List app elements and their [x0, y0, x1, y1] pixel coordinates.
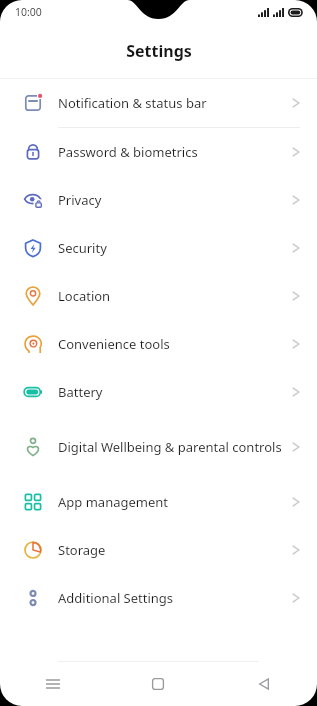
button[interactable]: Notification & status bar [0, 79, 317, 127]
button[interactable]: Password & biometrics [0, 128, 317, 176]
staticText: Location [58, 287, 282, 305]
button[interactable]: Security [0, 224, 317, 272]
staticText: Additional Settings [58, 589, 282, 607]
button[interactable]: Location [0, 272, 317, 320]
staticText: Notification & status bar [58, 94, 282, 112]
button[interactable]: Digital Wellbeing & parental controls [0, 416, 317, 478]
button[interactable]: Additional Settings [0, 574, 317, 622]
staticText: Security [58, 239, 282, 257]
button[interactable]: Home [105, 662, 211, 706]
button[interactable]: Convenience tools [0, 320, 317, 368]
button[interactable]: Recents [0, 662, 105, 706]
staticText: Privacy [58, 191, 282, 209]
staticText: 10:00 [15, 5, 42, 19]
staticText: Convenience tools [58, 335, 282, 353]
button[interactable]: App management [0, 478, 317, 526]
button[interactable]: Privacy [0, 176, 317, 224]
button[interactable]: Back [211, 662, 317, 706]
staticText: Storage [58, 541, 282, 559]
staticText: Settings [126, 40, 192, 62]
staticText: Digital Wellbeing & parental controls [58, 438, 282, 456]
staticText: Password & biometrics [58, 143, 282, 161]
staticText: Battery [58, 383, 282, 401]
staticText: App management [58, 493, 282, 511]
button[interactable]: Battery [0, 368, 317, 416]
button[interactable]: Storage [0, 526, 317, 574]
